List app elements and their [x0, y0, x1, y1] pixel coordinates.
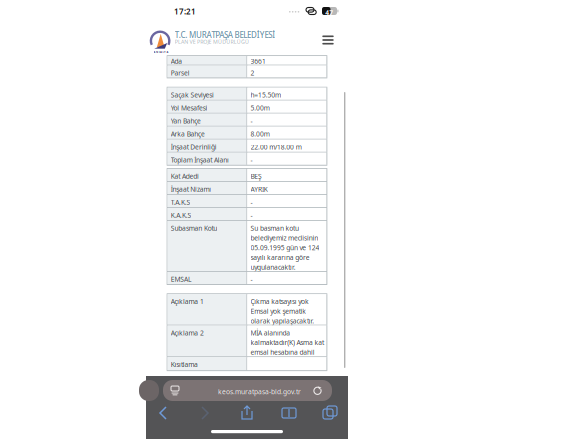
staticText: 5.00m [250, 103, 270, 112]
staticText: sayılı kararına göre [250, 253, 310, 262]
staticText: emsal hesabına dahil [250, 348, 315, 357]
staticText: olarak yapılaşacaktır. [250, 316, 314, 325]
staticText: K.A.K.S [171, 211, 191, 220]
staticText: İnşaat Derinliği [171, 142, 217, 151]
staticText: Kat Adedi [171, 172, 199, 181]
button[interactable]: Bookmarks [278, 404, 300, 422]
staticText: Açıklama 1 [171, 297, 204, 306]
button[interactable]: keos.muratpasa-bld.gov.tr [163, 380, 332, 401]
staticText: Arka Bahçe [171, 129, 205, 138]
staticText: Ada [171, 57, 182, 66]
staticText: - [250, 155, 252, 164]
staticText: ANTALYA [154, 50, 169, 54]
staticText: 17:21 [174, 6, 196, 17]
staticText: MİA alanında [250, 328, 290, 337]
staticText: belediyemiz meclisinin [250, 233, 318, 242]
button[interactable]: Menu [318, 30, 338, 50]
staticText: 05.09.1995 gün ve 124 [250, 243, 319, 252]
button[interactable]: Forward [194, 404, 216, 422]
staticText: BEŞ [250, 172, 262, 181]
staticText: 22.00 m/18.00 m [250, 142, 302, 151]
staticText: 8.00m [250, 129, 270, 138]
staticText: - [250, 275, 252, 284]
staticText: İnşaat Nizamı [171, 185, 211, 194]
staticText: Emsal yok şematik [250, 307, 306, 316]
staticText: Parsel [171, 68, 190, 77]
staticText: 47 [325, 8, 333, 17]
staticText: kalmaktadır(K) Asma kat [250, 338, 324, 347]
staticText: 2 [250, 68, 254, 77]
button[interactable]: Back [152, 404, 174, 422]
staticText: 3661 [250, 57, 266, 66]
staticText: - [250, 116, 252, 125]
staticText: Su basman kotu [250, 224, 299, 233]
staticText: T.A.K.S [171, 198, 190, 207]
staticText: PLAN VE PROJE MÜDÜRLÜĞÜ [175, 38, 249, 45]
staticText: Toplam İnşaat Alanı [171, 155, 229, 164]
staticText: EMSAL [171, 275, 191, 284]
staticText: uygulanacaktır. [250, 263, 296, 271]
staticText: Kısıtlama [171, 360, 198, 369]
staticText: Saçak Seviyesi [171, 90, 214, 99]
staticText: Çıkma katsayısı yok [250, 297, 309, 306]
staticText: - [250, 198, 252, 207]
staticText: Açıklama 2 [171, 328, 204, 337]
staticText: - [250, 211, 252, 220]
staticText: Subasman Kotu [171, 224, 217, 233]
button[interactable]: Share [236, 404, 258, 422]
staticText: keos.muratpasa-bld.gov.tr [218, 387, 301, 396]
button[interactable]: Tabs [320, 404, 342, 422]
staticText: h=15.50m [250, 90, 281, 99]
staticText: T.C. MURATPAŞA BELEDİYESİ [175, 30, 275, 40]
staticText: Yol Mesafesi [171, 103, 207, 112]
staticText: AYRIK [250, 185, 268, 194]
staticText: Yan Bahçe [171, 116, 201, 125]
